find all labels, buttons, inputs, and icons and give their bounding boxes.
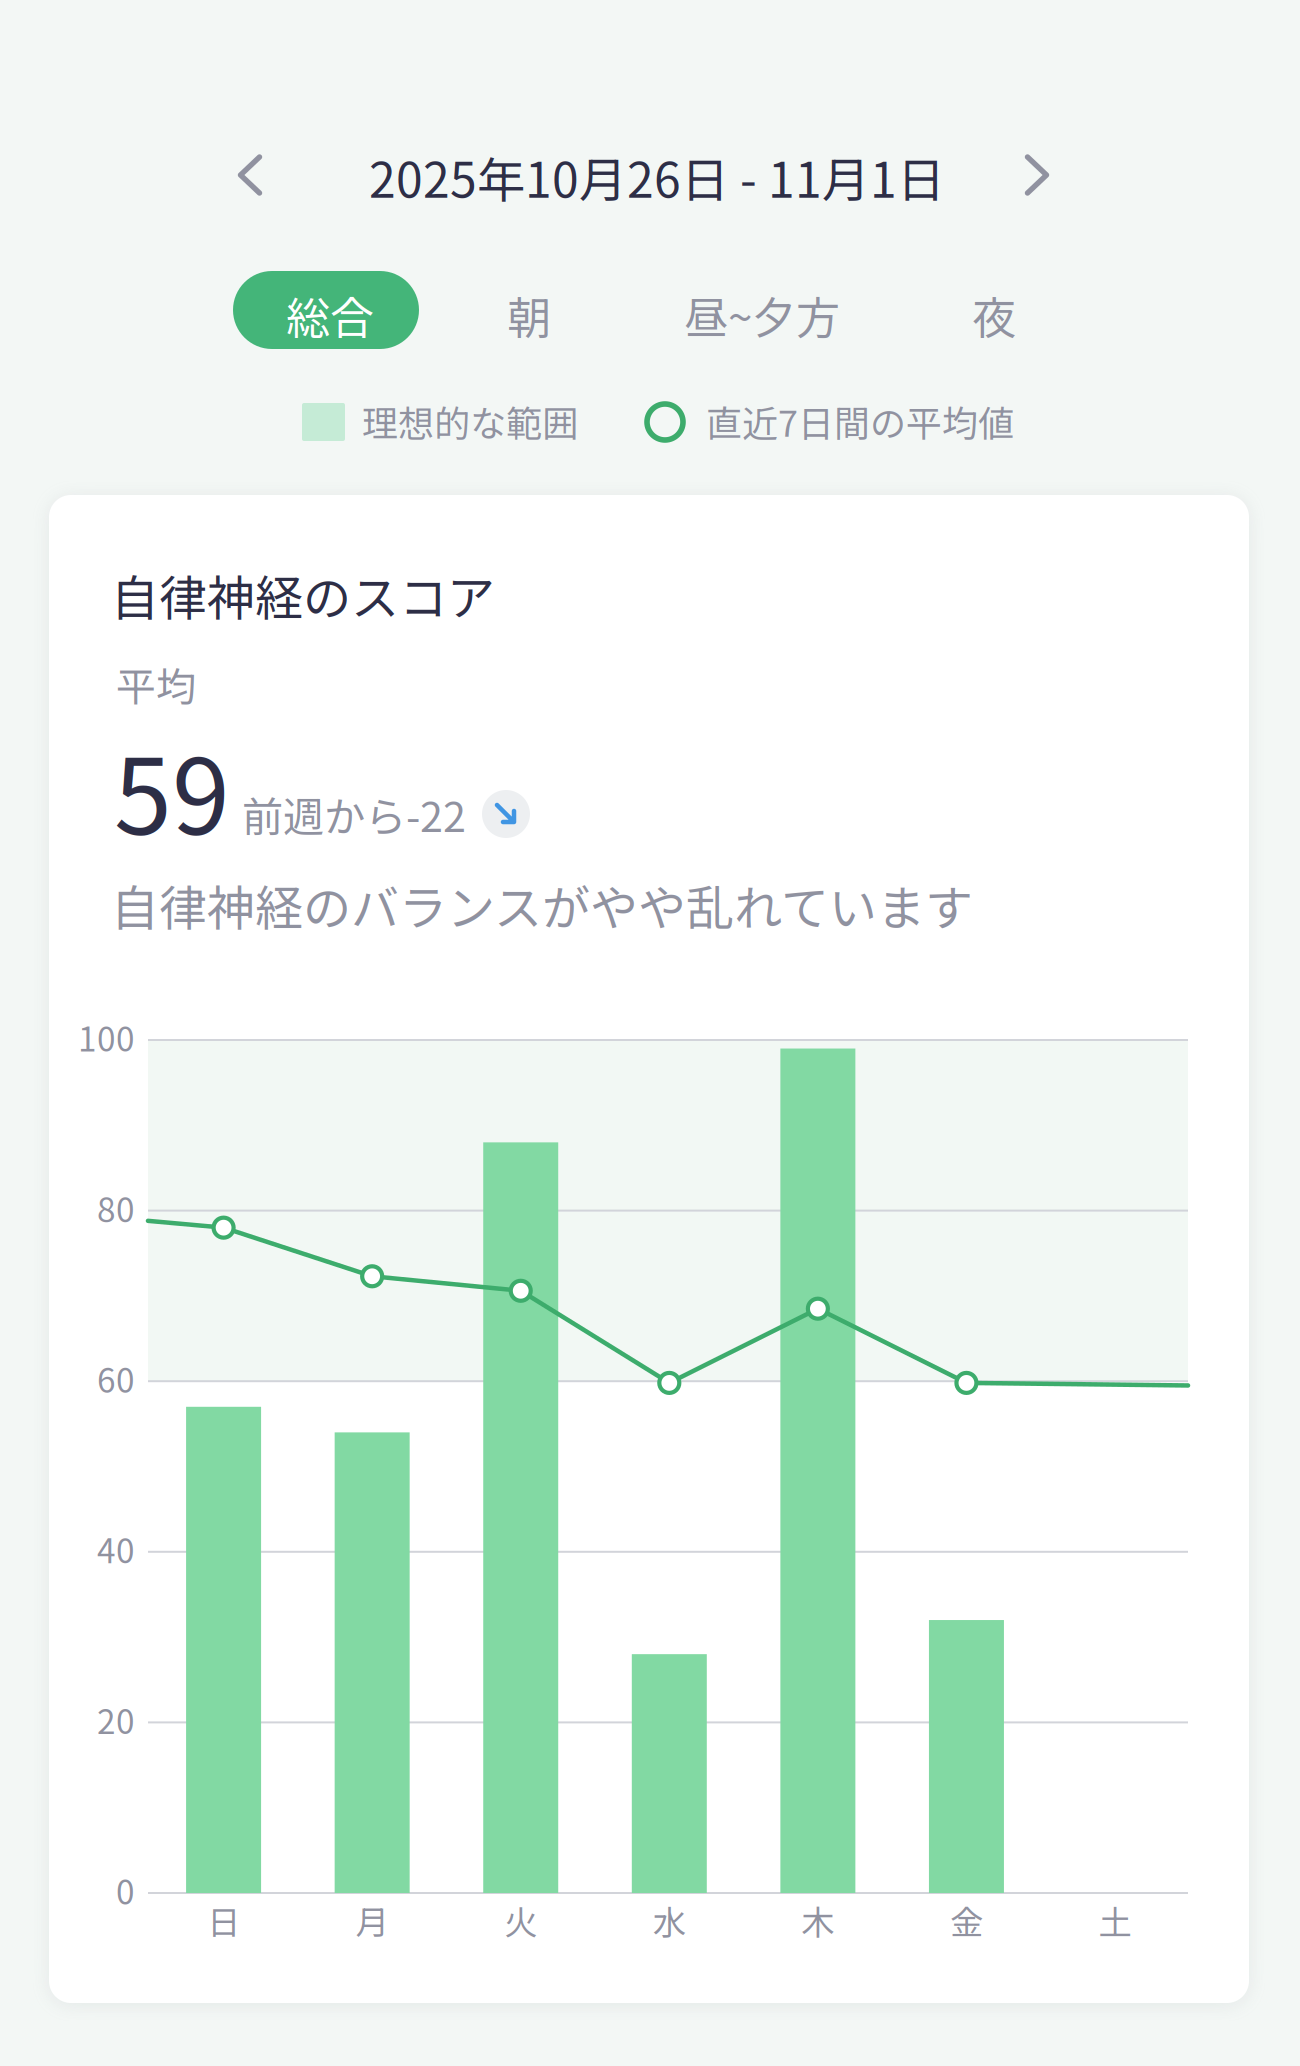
button[interactable]: 次の週 <box>1001 139 1073 211</box>
staticText: 火 <box>504 1896 537 1944</box>
staticText: 木 <box>801 1896 834 1944</box>
staticText: 80 <box>97 1183 135 1232</box>
staticText: 0 <box>116 1866 135 1914</box>
staticText: 40 <box>97 1525 135 1573</box>
staticText: 朝 <box>507 283 551 347</box>
staticText: 夜 <box>972 283 1016 347</box>
staticText: 土 <box>1098 1896 1131 1944</box>
staticText: 昼~夕方 <box>684 283 840 347</box>
button[interactable]: 総合 <box>233 271 419 349</box>
staticText: 総合 <box>286 283 374 347</box>
staticText: 2025年10月26日 - 11月1日 <box>369 142 945 211</box>
staticText: 月 <box>356 1896 389 1944</box>
staticText: 金 <box>950 1896 983 1944</box>
button[interactable]: 昼~夕方 <box>660 271 860 349</box>
staticText: 20 <box>97 1695 135 1744</box>
staticText: 59 <box>114 714 230 865</box>
staticText: 前週から-22 <box>242 784 466 844</box>
staticText: 水 <box>653 1896 686 1944</box>
staticText: 平均 <box>116 655 196 713</box>
staticText: 60 <box>97 1354 135 1402</box>
button[interactable]: 朝 <box>447 271 607 349</box>
button[interactable]: 前の週 <box>214 139 286 211</box>
staticText: 自律神経のバランスがやや乱れています <box>111 870 973 939</box>
staticText: 100 <box>78 1013 135 1061</box>
staticText: 自律神経のスコア <box>111 560 495 629</box>
staticText: 理想的な範囲 <box>362 395 578 447</box>
staticText: 日 <box>207 1896 240 1944</box>
staticText: 直近7日間の平均値 <box>706 395 1014 447</box>
button[interactable]: 夜 <box>914 271 1074 349</box>
